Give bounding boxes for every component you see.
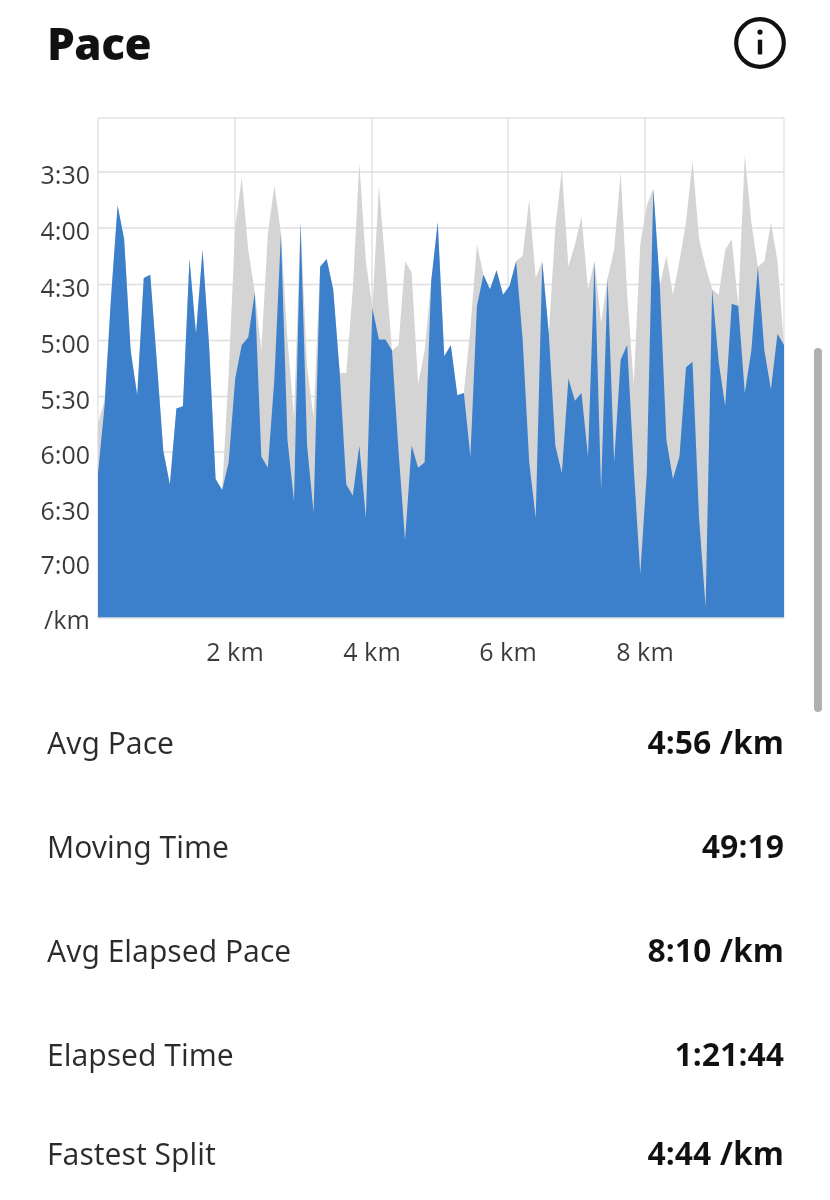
staticText: 8 km: [600, 634, 690, 668]
staticText: 8:10 /km: [647, 928, 784, 972]
staticText: 2 km: [190, 634, 280, 668]
staticText: Fastest Split: [47, 1133, 216, 1174]
staticText: /km: [40, 602, 90, 636]
button[interactable]: Info about pace: [734, 17, 786, 69]
staticText: Avg Pace: [47, 722, 174, 763]
staticText: 4:56 /km: [647, 720, 784, 764]
staticText: 3:30: [40, 157, 90, 191]
staticText: 1:21:44: [674, 1032, 784, 1076]
staticText: 6:00: [40, 437, 90, 471]
staticText: Avg Elapsed Pace: [47, 930, 292, 971]
staticText: Moving Time: [47, 826, 229, 867]
staticText: 49:19: [701, 824, 784, 868]
staticText: Pace: [47, 13, 152, 73]
staticText: 6:30: [40, 493, 90, 527]
staticText: 5:00: [40, 326, 90, 360]
staticText: 5:30: [40, 382, 90, 416]
staticText: 4:30: [40, 270, 90, 304]
staticText: 4:44 /km: [647, 1131, 784, 1175]
button[interactable]: Elapsed Time: [0, 1002, 830, 1106]
staticText: 4 km: [327, 634, 417, 668]
staticText: Elapsed Time: [47, 1034, 234, 1075]
button[interactable]: Fastest Split: [0, 1106, 830, 1200]
button[interactable]: Avg Pace: [0, 690, 830, 794]
button[interactable]: Avg Elapsed Pace: [0, 898, 830, 1002]
staticText: 4:00: [40, 213, 90, 247]
button[interactable]: Moving Time: [0, 794, 830, 898]
staticText: 7:00: [40, 547, 90, 581]
staticText: 6 km: [463, 634, 553, 668]
